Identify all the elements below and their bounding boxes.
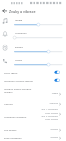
staticText: Tichý režim	[4, 71, 18, 74]
button[interactable]: Tón zprávy	[0, 123, 66, 135]
staticText: Vypnuto	[49, 102, 58, 105]
staticText: SIM 1 Vyzvánění Tichý zvonek SIM 2 Vyzvá…	[41, 108, 58, 120]
button[interactable]: Vyzvánění	[0, 31, 66, 44]
button[interactable]: Vibrovat v tichém režimu	[0, 76, 66, 84]
staticText: Vizuální hlášky volného hlášení	[4, 87, 32, 94]
staticText: Zvuky a vibrace	[9, 9, 36, 14]
button[interactable]: Média	[0, 18, 66, 31]
staticText: Budíky	[15, 45, 23, 48]
button[interactable]: Vizuální hlášky volného hlášení	[0, 84, 66, 96]
staticText: Vyzvánění telefonu	[4, 115, 27, 118]
staticText: Tón zprávy	[4, 128, 17, 131]
staticText: Zvonek	[50, 136, 58, 139]
button[interactable]: Vyzvánění telefonu	[0, 110, 66, 122]
staticText: Vyzvánění	[15, 31, 27, 34]
staticText: Nerušit	[4, 102, 13, 105]
staticText: Zvonek	[50, 128, 58, 131]
staticText: Média	[51, 92, 58, 95]
staticText: Vibrovat v tichém režimu	[4, 79, 34, 82]
button[interactable]: Zvuk oznámení	[0, 131, 66, 141]
staticText: Volání	[15, 58, 23, 61]
staticText: Zvuk oznámení	[4, 136, 22, 139]
staticText: Média	[15, 18, 23, 21]
button[interactable]: Nerušit	[0, 97, 66, 109]
button[interactable]: Back	[0, 6, 10, 16]
button[interactable]: Tichý režim	[0, 68, 66, 76]
button[interactable]: Volání	[0, 58, 66, 71]
button[interactable]: Budíky	[0, 45, 66, 58]
